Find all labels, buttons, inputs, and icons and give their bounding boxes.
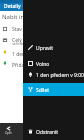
staticText: středa 12. 6.: [12, 41, 37, 47]
staticText: Stav: [12, 26, 22, 33]
staticText: 1 den předem: [12, 51, 45, 58]
button[interactable]: 1 den předem: [0, 48, 84, 59]
staticText: Odstranit: [36, 129, 59, 136]
staticText: Nabít inkoust: [2, 13, 40, 21]
button[interactable]: Odstranit: [23, 125, 84, 138]
button[interactable]: Sdílet: [23, 83, 84, 96]
staticText: Sdílet: [36, 87, 50, 94]
staticText: Celý den: [12, 37, 33, 44]
button[interactable]: Celý den: [0, 35, 84, 47]
button[interactable]: Back: [4, 126, 13, 135]
button[interactable]: Upravit: [23, 41, 84, 54]
staticText: Volno: [36, 61, 50, 68]
button[interactable]: 1 den předem v 9:00: [23, 68, 84, 81]
staticText: Detaily: [4, 3, 21, 10]
button[interactable]: Stav: [0, 23, 84, 35]
staticText: Přidat: [12, 62, 27, 69]
staticText: Zpět: [5, 131, 12, 135]
button[interactable]: Volno: [23, 57, 84, 70]
staticText: 1 den předem v 9:00: [36, 72, 84, 79]
staticText: Upravit: [36, 45, 54, 52]
button[interactable]: Přidat: [0, 59, 84, 70]
